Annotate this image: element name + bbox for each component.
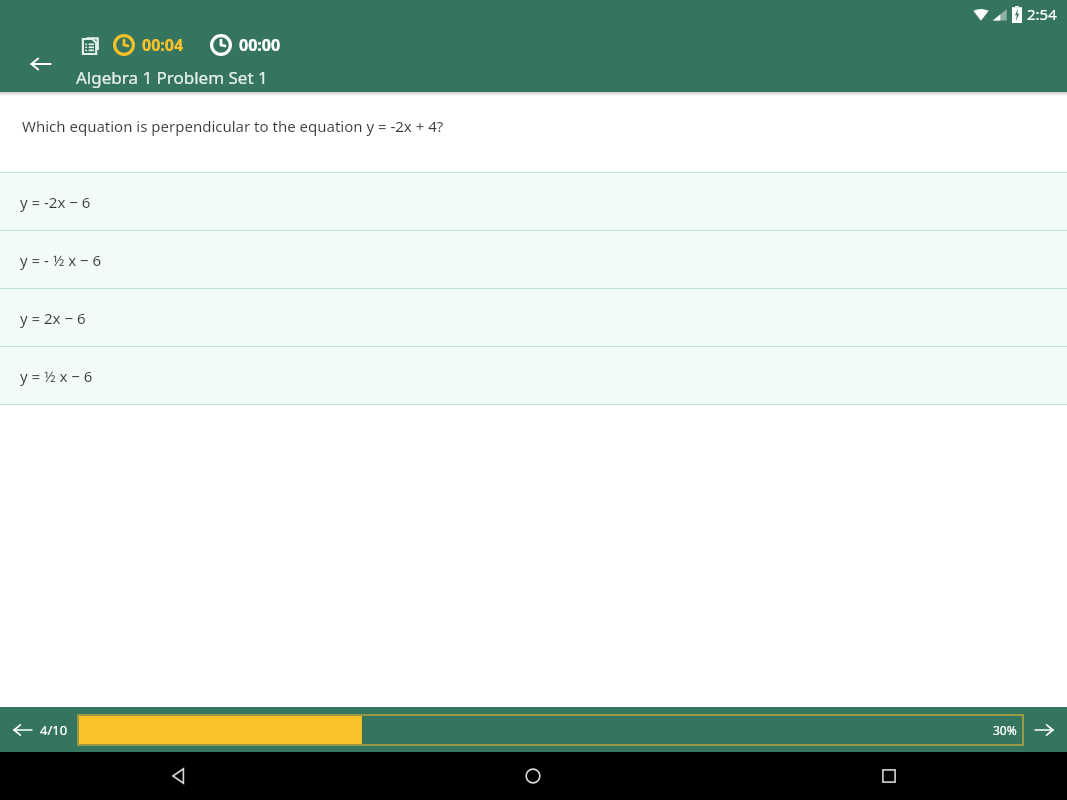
button[interactable]: Recent apps — [711, 752, 1067, 800]
staticText: y = - ½ x − 6 — [20, 250, 102, 270]
button[interactable]: 30% — [78, 715, 1023, 745]
button[interactable]: Back — [20, 43, 62, 85]
button[interactable]: Question list — [76, 31, 104, 59]
staticText: y = ½ x − 6 — [20, 366, 93, 386]
button[interactable]: Home — [355, 752, 711, 800]
button[interactable]: y = ½ x − 6 — [0, 347, 1067, 404]
button[interactable]: Back — [0, 752, 355, 800]
staticText: Which equation is perpendicular to the e… — [22, 116, 444, 136]
staticText: y = -2x − 6 — [20, 192, 91, 212]
staticText: 2:54 — [1027, 4, 1057, 24]
button[interactable]: Next question — [1027, 713, 1061, 747]
button[interactable]: y = -2x − 6 — [0, 173, 1067, 230]
button[interactable]: y = 2x − 6 — [0, 289, 1067, 346]
staticText: 30% — [993, 722, 1017, 738]
button[interactable]: 00:00 — [210, 34, 281, 56]
staticText: 00:04 — [142, 34, 184, 56]
staticText: y = 2x − 6 — [20, 308, 86, 328]
staticText: 00:00 — [239, 34, 281, 56]
staticText: 4/10 — [40, 721, 68, 739]
button[interactable]: y = - ½ x − 6 — [0, 231, 1067, 288]
button[interactable]: Previous question — [6, 713, 40, 747]
staticText: Algebra 1 Problem Set 1 — [76, 66, 268, 89]
button[interactable]: 00:04 — [113, 34, 184, 56]
